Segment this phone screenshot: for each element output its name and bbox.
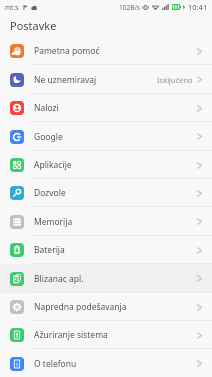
staticText: Postavke	[10, 18, 57, 33]
button[interactable]: Pametna pomoć	[0, 37, 212, 65]
staticText: Blizanac apl.	[34, 273, 84, 285]
staticText: O telefonu	[34, 358, 77, 370]
button[interactable]: Nalozi	[0, 94, 212, 122]
staticText: Dozvole	[34, 187, 66, 199]
staticText: Ažuriranje sistema	[34, 329, 108, 341]
button[interactable]: Ažuriranje sistema	[0, 321, 212, 349]
staticText: mt:s	[5, 3, 19, 12]
staticText: Baterija	[34, 244, 65, 256]
staticText: 10:41	[188, 2, 208, 12]
staticText: Ne uznemiravaj	[34, 74, 97, 86]
button[interactable]: Google	[0, 122, 212, 151]
button[interactable]: Baterija	[0, 236, 212, 264]
staticText: Aplikacije	[34, 159, 72, 171]
button[interactable]: Ne uznemiravaj	[0, 65, 212, 94]
staticText: Memorija	[34, 216, 73, 228]
button[interactable]: Dozvole	[0, 179, 212, 207]
staticText: Isključeno	[157, 75, 193, 85]
button[interactable]: Aplikacije	[0, 151, 212, 179]
staticText: Napredna podešavanja	[34, 301, 127, 313]
staticText: Google	[34, 131, 63, 143]
button[interactable]: Napredna podešavanja	[0, 293, 212, 321]
staticText: 102B/s	[119, 3, 140, 12]
staticText: Nalozi	[34, 102, 59, 114]
button[interactable]: O telefonu	[0, 349, 212, 377]
staticText: Pametna pomoć	[34, 45, 100, 57]
button[interactable]: Memorija	[0, 207, 212, 236]
button[interactable]: Blizanac apl.	[0, 264, 212, 293]
